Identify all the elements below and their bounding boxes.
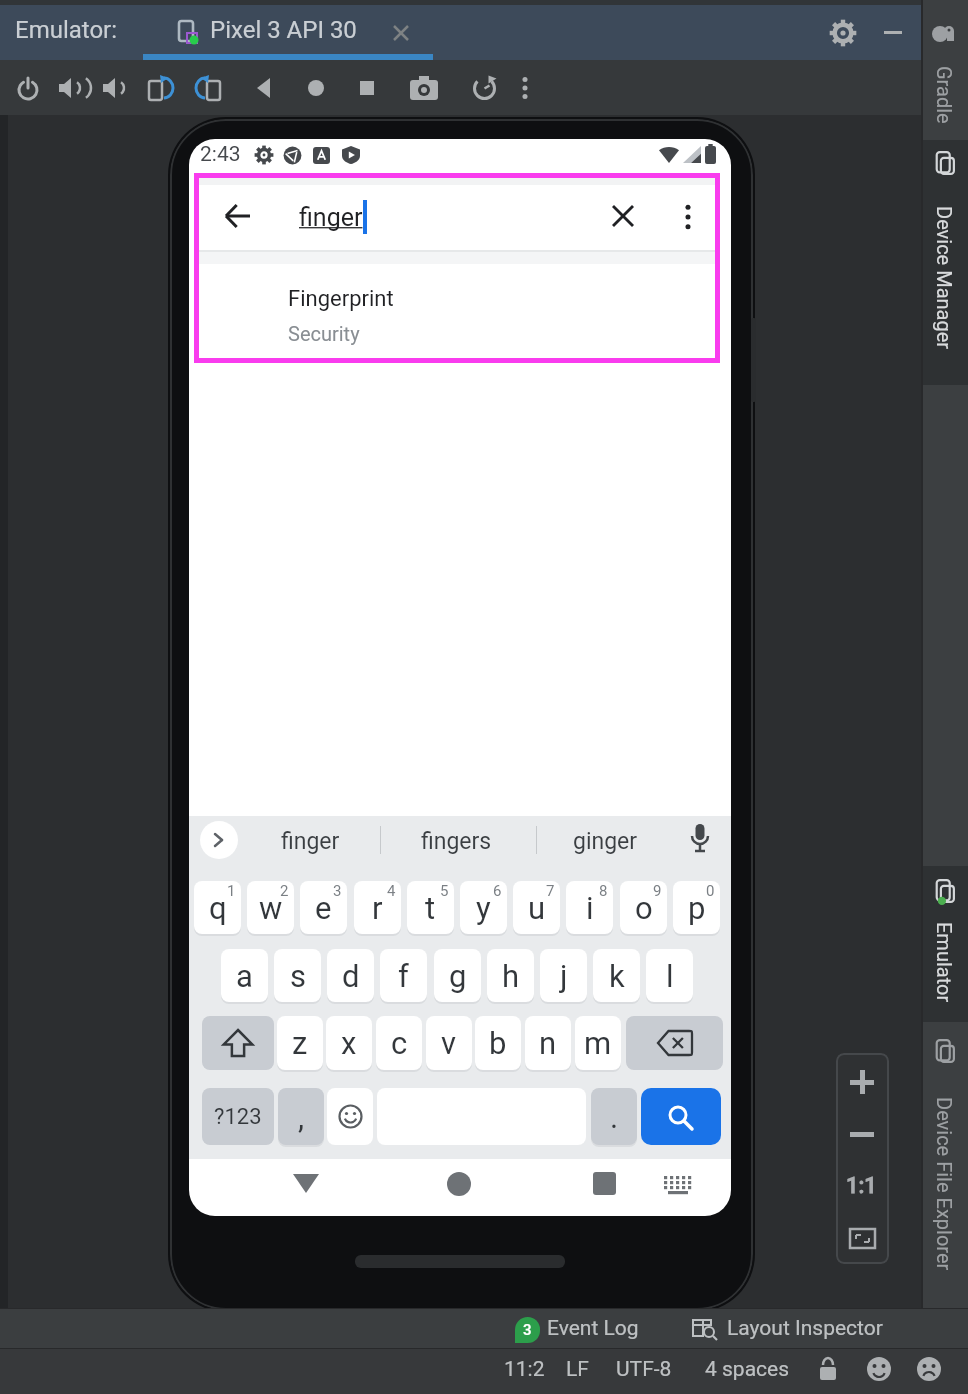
staticText: b — [489, 1025, 507, 1061]
button[interactable]: ginger — [535, 827, 675, 855]
button[interactable]: u — [513, 881, 560, 934]
button[interactable] — [641, 1088, 721, 1145]
button[interactable] — [199, 178, 715, 250]
button[interactable]: n — [525, 1016, 571, 1070]
button[interactable]: c — [376, 1016, 422, 1070]
button[interactable]: m — [575, 1016, 621, 1070]
staticText: m — [584, 1025, 612, 1061]
staticText: 11:2 — [504, 1357, 545, 1382]
button[interactable]: z — [277, 1016, 323, 1070]
button[interactable] — [518, 76, 532, 100]
button[interactable] — [199, 264, 715, 358]
staticText: 4 spaces — [705, 1357, 790, 1382]
staticText: q — [209, 890, 227, 926]
button[interactable] — [611, 204, 635, 228]
button[interactable] — [664, 1176, 692, 1196]
button[interactable] — [200, 821, 238, 859]
button[interactable]: h — [487, 949, 534, 1002]
button[interactable]: b — [475, 1016, 521, 1070]
button[interactable]: ?123 — [202, 1088, 274, 1145]
button[interactable]: d — [327, 949, 374, 1002]
button[interactable]: p — [673, 881, 720, 934]
button[interactable]: , — [278, 1088, 324, 1145]
button[interactable] — [358, 79, 376, 97]
button[interactable]: fingers — [386, 827, 526, 855]
button[interactable]: y — [460, 881, 507, 934]
button[interactable] — [255, 78, 275, 98]
button[interactable]: . — [591, 1088, 637, 1145]
button[interactable] — [593, 1172, 616, 1195]
staticText: Emulator — [933, 922, 956, 1003]
staticText: Security — [288, 322, 360, 345]
button[interactable] — [471, 75, 498, 102]
button[interactable] — [690, 824, 710, 854]
button[interactable] — [626, 1016, 723, 1070]
staticText: o — [635, 890, 653, 926]
staticText: n — [539, 1025, 557, 1061]
button[interactable] — [447, 1172, 471, 1196]
staticText: 2:43 — [200, 142, 241, 167]
button[interactable]: 3 — [515, 1317, 540, 1343]
staticText: Device Manager — [933, 206, 956, 350]
staticText: y — [476, 890, 491, 926]
button[interactable] — [923, 140, 968, 385]
button[interactable] — [15, 75, 41, 101]
button[interactable]: x — [326, 1016, 372, 1070]
button[interactable]: s — [274, 949, 321, 1002]
staticText: , — [298, 1099, 305, 1135]
button[interactable]: q — [194, 881, 241, 934]
button[interactable]: finger — [240, 827, 380, 855]
button[interactable] — [838, 1164, 887, 1209]
button[interactable] — [202, 1016, 274, 1070]
staticText: Pixel 3 API 30 — [210, 16, 357, 44]
button[interactable]: t — [407, 881, 454, 934]
button[interactable]: l — [646, 949, 693, 1002]
button[interactable] — [838, 1112, 887, 1157]
button[interactable]: Layout Inspector — [727, 1312, 897, 1344]
button[interactable]: g — [434, 949, 481, 1002]
staticText: s — [290, 958, 306, 994]
staticText: 6 — [493, 882, 502, 900]
staticText: 0 — [706, 882, 715, 900]
button[interactable] — [143, 0, 433, 60]
button[interactable] — [838, 1060, 887, 1105]
button[interactable] — [838, 1216, 887, 1261]
button[interactable] — [147, 75, 175, 101]
button[interactable]: o — [620, 881, 667, 934]
staticText: e — [315, 890, 332, 926]
button[interactable]: f — [380, 949, 427, 1002]
button[interactable]: k — [593, 949, 640, 1002]
staticText: 5 — [440, 882, 449, 900]
button[interactable] — [681, 203, 695, 231]
staticText: 9 — [653, 882, 662, 900]
button[interactable] — [293, 1172, 319, 1194]
button[interactable] — [327, 1088, 373, 1145]
staticText: Emulator: — [15, 16, 118, 44]
button[interactable] — [101, 75, 127, 101]
button[interactable] — [57, 75, 85, 101]
button[interactable]: v — [426, 1016, 472, 1070]
staticText: Gradle — [933, 66, 956, 124]
button[interactable]: r — [354, 881, 401, 934]
button[interactable]: Event Log — [547, 1312, 649, 1344]
staticText: Event Log — [547, 1316, 639, 1341]
button[interactable]: j — [540, 949, 587, 1002]
button[interactable]: w — [247, 881, 294, 934]
button[interactable]: i — [566, 881, 613, 934]
button[interactable] — [194, 75, 222, 101]
button[interactable] — [410, 76, 438, 100]
staticText: Device File Explorer — [933, 1097, 956, 1271]
button[interactable] — [225, 203, 251, 229]
staticText: k — [609, 958, 625, 994]
staticText: Layout Inspector — [727, 1316, 883, 1341]
button[interactable] — [307, 79, 325, 97]
button[interactable]: a — [221, 949, 268, 1002]
button[interactable] — [830, 20, 856, 46]
button[interactable] — [923, 866, 968, 1022]
staticText: LF — [566, 1357, 589, 1382]
button[interactable]: e — [300, 881, 347, 934]
staticText: p — [688, 890, 706, 926]
staticText: 3 — [523, 1321, 532, 1339]
